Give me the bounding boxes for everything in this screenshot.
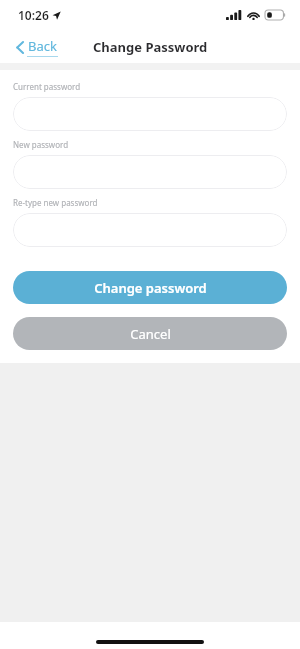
staticText: Change Password bbox=[93, 38, 208, 56]
staticText: Cancel bbox=[130, 325, 171, 343]
staticText: Re-type new password bbox=[13, 197, 98, 208]
button[interactable]: Change password bbox=[13, 271, 287, 304]
staticText: Current password bbox=[13, 81, 81, 92]
button[interactable]: Back bbox=[12, 33, 62, 61]
staticText: Back bbox=[28, 37, 57, 55]
button[interactable] bbox=[13, 155, 287, 189]
staticText: 10:26 bbox=[18, 7, 49, 23]
button[interactable] bbox=[13, 97, 287, 131]
staticText: Change password bbox=[94, 279, 207, 297]
staticText: New password bbox=[13, 139, 69, 150]
button[interactable]: Cancel bbox=[13, 317, 287, 350]
button[interactable] bbox=[13, 213, 287, 247]
